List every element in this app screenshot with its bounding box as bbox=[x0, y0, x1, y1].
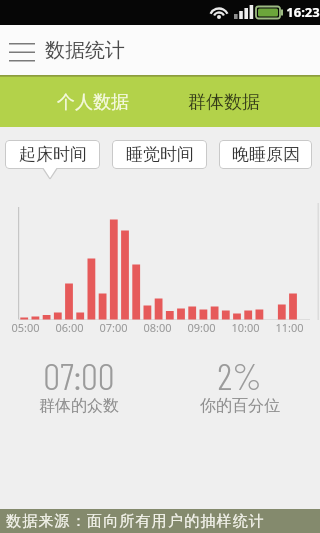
staticText: 睡觉时间 bbox=[126, 144, 194, 165]
button[interactable] bbox=[0, 25, 320, 75]
button[interactable]: 群体数据 bbox=[160, 77, 320, 127]
staticText: 07:00 bbox=[99, 320, 128, 334]
button[interactable]: 起床时间 bbox=[5, 140, 100, 169]
staticText: 晚睡原因 bbox=[232, 144, 300, 165]
staticText: 2% bbox=[217, 352, 262, 398]
button[interactable]: 数据来源：面向所有用户的抽样统计 bbox=[0, 509, 320, 533]
staticText: 数据统计 bbox=[45, 38, 125, 63]
staticText: 07:00 bbox=[43, 352, 115, 398]
staticText: 起床时间 bbox=[19, 144, 87, 165]
staticText: 06:00 bbox=[55, 320, 84, 334]
staticText: 05:00 bbox=[11, 320, 40, 334]
button[interactable]: 晚睡原因 bbox=[219, 140, 312, 169]
staticText: 16:23 bbox=[286, 3, 320, 21]
staticText: 11:00 bbox=[275, 320, 304, 334]
button[interactable]: 个人数据 bbox=[0, 77, 160, 127]
button[interactable]: 睡觉时间 bbox=[112, 140, 207, 169]
staticText: 09:00 bbox=[187, 320, 216, 334]
staticText: 群体的众数 bbox=[39, 396, 119, 416]
staticText: 08:00 bbox=[143, 320, 172, 334]
staticText: 你的百分位 bbox=[200, 396, 280, 416]
staticText: 群体数据 bbox=[188, 91, 260, 114]
staticText: 10:00 bbox=[231, 320, 260, 334]
staticText: 个人数据 bbox=[57, 91, 129, 114]
staticText: 数据来源：面向所有用户的抽样统计 bbox=[6, 512, 266, 531]
